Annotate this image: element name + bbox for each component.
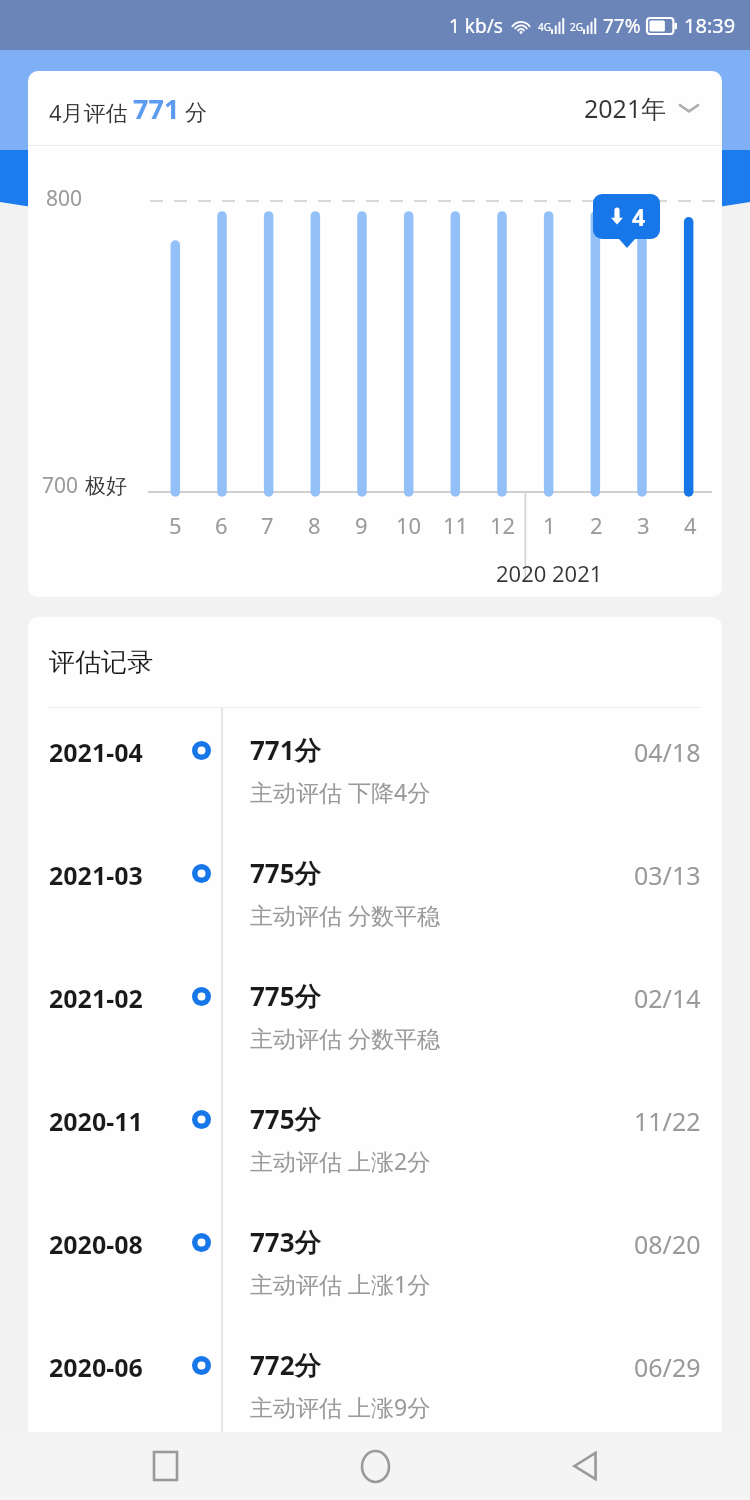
staticText: 分: [185, 99, 207, 127]
button[interactable]: 2020-11: [28, 1077, 722, 1200]
staticText: 775分: [250, 978, 321, 1014]
staticText: 775分: [250, 1101, 321, 1137]
staticText: 4: [684, 510, 697, 540]
staticText: 771: [133, 90, 180, 127]
staticText: 8: [308, 510, 321, 540]
staticText: 9: [355, 510, 368, 540]
button[interactable]: 2020-08: [28, 1200, 722, 1323]
other: Select year: [677, 101, 701, 115]
staticText: 77%: [603, 13, 641, 39]
staticText: 12: [490, 510, 516, 540]
staticText: 主动评估 上涨1分: [250, 1268, 431, 1299]
button[interactable]: 2020-06: [28, 1323, 722, 1432]
staticText: 4月评估: [49, 97, 128, 127]
staticText: 2: [590, 510, 603, 540]
staticText: 700: [42, 471, 79, 500]
staticText: 02/14: [634, 981, 701, 1015]
staticText: 2020-11: [49, 1104, 143, 1138]
staticText: 03/13: [634, 858, 701, 892]
staticText: 773分: [250, 1224, 321, 1260]
button[interactable]: Home: [330, 1432, 420, 1500]
staticText: 772分: [250, 1347, 321, 1383]
staticText: 2G: [570, 20, 583, 34]
button[interactable]: 2021-04: [28, 708, 722, 831]
staticText: 6: [215, 510, 228, 540]
staticText: 主动评估 分数平稳: [250, 1022, 440, 1053]
staticText: 2021: [552, 558, 603, 588]
button[interactable]: 4: [607, 201, 646, 232]
button[interactable]: Recent apps: [120, 1432, 210, 1500]
button[interactable]: Back: [540, 1432, 630, 1500]
staticText: 1 kb/s: [449, 13, 503, 39]
staticText: 10: [396, 510, 422, 540]
button[interactable]: 2021-02: [28, 954, 722, 1077]
staticText: 7: [261, 510, 274, 540]
staticText: 11/22: [634, 1104, 701, 1138]
staticText: 771分: [250, 732, 321, 768]
staticText: 04/18: [634, 735, 701, 769]
staticText: 5: [169, 510, 182, 540]
staticText: 4G: [538, 20, 551, 34]
staticText: 极好: [85, 473, 127, 499]
staticText: 1: [543, 510, 556, 540]
staticText: 主动评估 上涨9分: [250, 1391, 431, 1422]
staticText: 评估记录: [49, 646, 153, 679]
staticText: 3: [637, 510, 650, 540]
staticText: 主动评估 分数平稳: [250, 899, 440, 930]
staticText: 主动评估 上涨2分: [250, 1145, 431, 1176]
staticText: 2021-04: [49, 735, 143, 769]
staticText: 2021年: [584, 91, 667, 125]
button[interactable]: 2021-03: [28, 831, 722, 954]
staticText: 18:39: [684, 12, 736, 39]
staticText: 2020-06: [49, 1350, 143, 1384]
staticText: 2021-03: [49, 858, 143, 892]
button[interactable]: 4月评估: [28, 71, 722, 145]
staticText: 08/20: [634, 1227, 701, 1261]
staticText: 2020-08: [49, 1227, 143, 1261]
staticText: 2020: [496, 558, 547, 588]
staticText: 11: [443, 510, 469, 540]
staticText: 06/29: [634, 1350, 701, 1384]
staticText: 主动评估 下降4分: [250, 776, 431, 807]
staticText: 2021-02: [49, 981, 143, 1015]
staticText: 4: [632, 201, 646, 232]
staticText: 775分: [250, 855, 321, 891]
staticText: 800: [46, 184, 83, 213]
